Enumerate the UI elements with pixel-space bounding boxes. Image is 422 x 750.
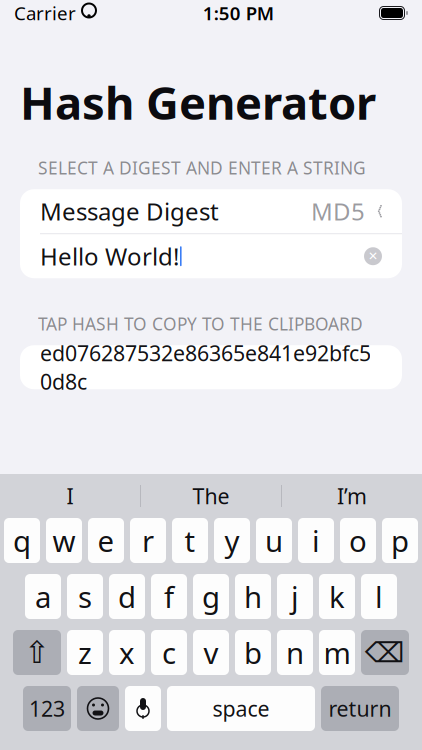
staticText: f bbox=[164, 577, 174, 616]
staticText: m bbox=[323, 633, 350, 672]
staticText: 1:50 PM bbox=[203, 1, 274, 25]
button[interactable]: f bbox=[151, 574, 187, 619]
staticText: Message Digest bbox=[40, 195, 219, 227]
button[interactable]: z bbox=[67, 630, 103, 675]
staticText: ✕ bbox=[368, 249, 378, 263]
button[interactable]: 123 bbox=[23, 686, 71, 731]
staticText: d bbox=[118, 577, 136, 616]
staticText: p bbox=[391, 521, 409, 560]
button[interactable]: Message Digest bbox=[20, 189, 402, 233]
staticText: e bbox=[97, 521, 114, 560]
staticText: t bbox=[184, 521, 195, 560]
staticText: w bbox=[52, 521, 75, 560]
staticText: z bbox=[78, 633, 92, 672]
staticText: I bbox=[66, 482, 73, 510]
staticText: space bbox=[212, 694, 269, 723]
button[interactable]: g bbox=[193, 574, 229, 619]
button[interactable]: Hello World! bbox=[20, 234, 402, 278]
button[interactable]: Delete bbox=[361, 630, 409, 675]
staticText: u bbox=[265, 521, 283, 560]
button[interactable]: h bbox=[235, 574, 271, 619]
staticText: c bbox=[162, 633, 176, 672]
staticText: l bbox=[375, 577, 383, 616]
button[interactable]: q bbox=[4, 518, 40, 563]
staticText: i bbox=[312, 521, 320, 560]
button[interactable]: d bbox=[109, 574, 145, 619]
button[interactable]: r bbox=[130, 518, 166, 563]
staticText: v bbox=[203, 633, 218, 672]
staticText: h bbox=[244, 577, 262, 616]
staticText: Hash Generator bbox=[20, 72, 376, 132]
button[interactable]: c bbox=[151, 630, 187, 675]
button[interactable]: space bbox=[167, 686, 315, 731]
button[interactable]: The bbox=[141, 474, 281, 518]
staticText: ⇧ bbox=[24, 635, 50, 670]
button[interactable]: w bbox=[46, 518, 82, 563]
button[interactable]: e bbox=[88, 518, 124, 563]
button[interactable]: a bbox=[25, 574, 61, 619]
staticText: TAP HASH TO COPY TO THE CLIPBOARD bbox=[38, 312, 363, 335]
button[interactable]: o bbox=[340, 518, 376, 563]
staticText: a bbox=[35, 577, 51, 616]
staticText: s bbox=[78, 577, 92, 616]
button[interactable]: t bbox=[172, 518, 208, 563]
staticText: return bbox=[328, 694, 391, 723]
button[interactable]: u bbox=[256, 518, 292, 563]
staticText: q bbox=[13, 521, 31, 560]
button[interactable]: ed076287532e86365e841e92bfc50d8c bbox=[20, 345, 402, 389]
staticText: ed076287532e86365e841e92bfc50d8c bbox=[40, 339, 371, 396]
staticText: n bbox=[286, 633, 304, 672]
staticText: y bbox=[224, 521, 239, 560]
staticText: ⌫ bbox=[365, 637, 405, 668]
staticText: Hello World! bbox=[40, 240, 179, 272]
button[interactable]: i bbox=[298, 518, 334, 563]
staticText: MD5 bbox=[311, 195, 365, 227]
staticText: 123 bbox=[29, 694, 65, 723]
staticText: r bbox=[142, 521, 154, 560]
button[interactable]: Dictate bbox=[125, 686, 161, 731]
button[interactable]: n bbox=[277, 630, 313, 675]
button[interactable]: Emoji bbox=[77, 686, 119, 731]
staticText: Carrier bbox=[14, 1, 76, 25]
staticText: x bbox=[119, 633, 135, 672]
button[interactable]: v bbox=[193, 630, 229, 675]
staticText: The bbox=[192, 482, 229, 510]
button[interactable]: x bbox=[109, 630, 145, 675]
button[interactable]: Shift bbox=[13, 630, 61, 675]
staticText: SELECT A DIGEST AND ENTER A STRING bbox=[38, 156, 366, 179]
staticText: b bbox=[244, 633, 262, 672]
button[interactable]: j bbox=[277, 574, 313, 619]
button[interactable]: s bbox=[67, 574, 103, 619]
button[interactable]: k bbox=[319, 574, 355, 619]
button[interactable]: return bbox=[321, 686, 399, 731]
button[interactable]: b bbox=[235, 630, 271, 675]
staticText: j bbox=[291, 577, 299, 616]
button[interactable]: I bbox=[0, 474, 140, 518]
staticText: o bbox=[349, 521, 367, 560]
button[interactable]: y bbox=[214, 518, 250, 563]
staticText: g bbox=[202, 577, 220, 616]
button[interactable]: p bbox=[382, 518, 418, 563]
button[interactable]: I’m bbox=[282, 474, 422, 518]
staticText: I’m bbox=[337, 482, 367, 510]
button[interactable]: l bbox=[361, 574, 397, 619]
button[interactable]: m bbox=[319, 630, 355, 675]
staticText: k bbox=[329, 577, 345, 616]
